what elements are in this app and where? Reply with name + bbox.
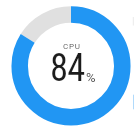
button[interactable]	[11, 6, 131, 126]
staticText: 84	[50, 45, 85, 85]
staticText: %	[86, 70, 96, 85]
staticText: CPU	[63, 42, 81, 51]
